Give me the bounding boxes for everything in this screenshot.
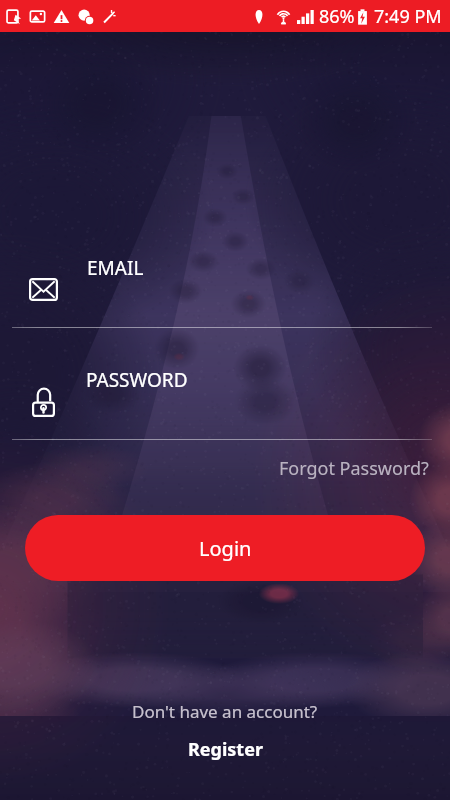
button[interactable]: Forgot Password? xyxy=(267,450,450,487)
staticText: 7:49 PM xyxy=(374,4,442,29)
staticText: Forgot Password? xyxy=(279,456,429,481)
staticText: EMAIL xyxy=(87,255,144,281)
staticText: Register xyxy=(188,737,263,762)
staticText: Don't have an account? xyxy=(132,700,318,723)
staticText: 86% xyxy=(319,4,355,29)
other: Email xyxy=(29,278,58,301)
button[interactable]: Password xyxy=(0,364,450,440)
button[interactable]: Register xyxy=(170,734,281,765)
staticText: Login xyxy=(199,535,252,562)
staticText: PASSWORD xyxy=(86,367,188,393)
other: Password xyxy=(32,387,55,417)
button[interactable]: Login xyxy=(25,515,425,581)
button[interactable]: Email xyxy=(0,252,450,328)
